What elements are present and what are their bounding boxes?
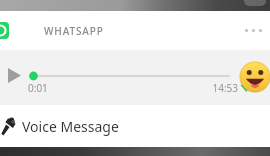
staticText: 0:01 [28,81,48,95]
staticText: WHATSAPP [44,24,104,38]
button[interactable]: Voice message [0,105,270,147]
staticText: 14:53 [212,81,238,95]
button[interactable]: Play voice message [0,50,270,105]
other: Voice message [1,117,18,136]
button[interactable]: More options [239,21,268,40]
button[interactable]: WHATSAPP [0,11,270,50]
staticText: Voice Message [22,117,119,136]
button[interactable]: Play voice message [3,64,25,86]
